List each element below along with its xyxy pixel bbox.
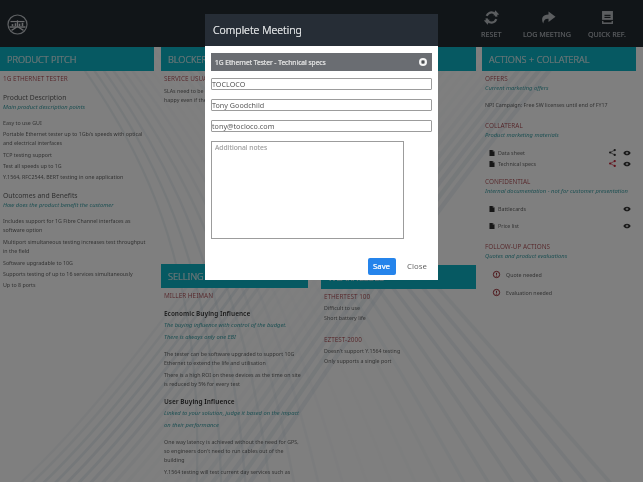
button[interactable]: View	[621, 158, 632, 169]
staticText: tony@tocloco.com	[212, 121, 275, 131]
button[interactable]: SELLING STRATEGY	[161, 264, 308, 288]
staticText: Close	[407, 261, 427, 272]
button[interactable]: BLOCKERS	[161, 47, 308, 71]
staticText: Product Description	[3, 93, 67, 102]
staticText: The tester can be software upgraded to s…	[164, 350, 302, 367]
staticText: WEAKNESSES	[328, 271, 385, 284]
staticText: Y.1564, RFC2544, BERT testing in one app…	[3, 173, 124, 180]
staticText: Battlecards	[498, 205, 526, 212]
button[interactable]: ACTIONS + COLLATERAL	[482, 47, 636, 71]
button[interactable]: Quote needed	[493, 268, 634, 280]
button[interactable]: Remove	[419, 58, 427, 66]
button[interactable]: Save	[368, 258, 396, 275]
staticText: Product marketing materials	[485, 131, 559, 139]
staticText: Includes support for 1G Fibre Channel in…	[3, 217, 148, 234]
staticText: LOG MEETING	[523, 29, 571, 39]
staticText: Additional notes	[215, 143, 268, 152]
staticText: Current marketing offers	[485, 84, 549, 92]
staticText: Software upgradable to 10G	[3, 259, 73, 266]
staticText: How does the product benefit the custome…	[3, 201, 114, 209]
staticText: Price list	[498, 222, 519, 229]
staticText: Evaluation needed	[506, 289, 553, 296]
staticText: EZTEST-2000	[324, 335, 362, 344]
button[interactable]: Additional notes	[211, 141, 404, 239]
staticText: TOCLOCO	[212, 79, 246, 89]
staticText: The buying influence with control of the…	[164, 321, 302, 341]
staticText: Doesn't support Y.1564 testing	[324, 347, 401, 354]
staticText: Y.1564 testing will test current day ser…	[164, 468, 302, 478]
button[interactable]: QUICK REF.	[578, 3, 636, 45]
staticText: SERVICE USUALLY DIFFICULT TO TEST	[164, 74, 276, 83]
staticText: Difficult to use	[324, 304, 361, 311]
staticText: COLLATERAL	[485, 121, 523, 130]
staticText: TCP testing support	[3, 151, 53, 158]
staticText: OFFERS	[485, 74, 508, 83]
button[interactable]: Evaluation needed	[493, 286, 634, 298]
staticText: ACTIONS + COLLATERAL	[489, 53, 590, 66]
staticText: Economic Buying Influence	[164, 309, 251, 318]
staticText: QUICK REF.	[588, 29, 626, 39]
button[interactable]: RESET	[466, 3, 516, 45]
button[interactable]: View	[621, 147, 632, 158]
staticText: RESET	[481, 29, 502, 39]
staticText: Multiport simultaneous testing increases…	[3, 238, 148, 255]
staticText: User Buying Influence	[164, 397, 235, 406]
button[interactable]: Technical specs	[485, 158, 634, 169]
staticText: Technical specs	[498, 160, 537, 167]
staticText: 1G Ethernet Tester - Technical specs	[215, 58, 326, 67]
staticText: Quote needed	[506, 271, 542, 278]
staticText: Outcomes and Benefits	[3, 191, 78, 200]
staticText: MILLER HEIMAN	[164, 291, 214, 300]
button[interactable]: 1G Ethernet Tester - Technical specs	[211, 53, 432, 71]
button[interactable]: tony@tocloco.com	[211, 120, 432, 132]
staticText: SELLING STRATEGY	[168, 270, 249, 283]
staticText: One way latency is achieved without the …	[164, 438, 302, 464]
button[interactable]: Data sheet	[485, 147, 634, 158]
staticText: NPI Campaign: Free SW licenses until end…	[485, 101, 608, 108]
button[interactable]: Battlecards	[485, 203, 634, 214]
button[interactable]: View	[621, 220, 632, 231]
button[interactable]: Tony Goodchild	[211, 99, 432, 111]
button[interactable]: LOG MEETING	[516, 3, 578, 45]
staticText: Portable Ethernet tester up to 1Gb/s spe…	[3, 130, 148, 147]
staticText: Complete Meeting	[213, 23, 302, 37]
button[interactable]: WEAKNESSES	[321, 265, 476, 289]
staticText: Only supports a single port	[324, 357, 392, 364]
staticText: Easy to use GUI	[3, 119, 42, 126]
button[interactable]: TOCLOCO	[211, 78, 432, 90]
staticText: Tony Goodchild	[212, 100, 265, 110]
staticText: Main product description points	[3, 103, 86, 111]
button[interactable]: Home	[7, 14, 28, 35]
staticText: ETHERTEST 100	[324, 292, 371, 301]
button[interactable]: Share	[607, 158, 618, 169]
staticText: FOLLOW-UP ACTIONS	[485, 242, 551, 251]
button[interactable]: Price list	[485, 220, 634, 231]
staticText: SLAs need to be put in place to ensure t…	[164, 87, 302, 104]
button[interactable]: View	[621, 203, 632, 214]
button[interactable]: PRODUCT PITCH	[0, 47, 154, 71]
staticText: Supports testing of up to 16 services si…	[3, 270, 133, 277]
staticText: Test all speeds up to 1G	[3, 162, 62, 169]
button[interactable]: COMPETITION	[321, 47, 476, 71]
staticText: There is a high ROI on these devices as …	[164, 371, 302, 388]
staticText: Internal documentation - not for custome…	[485, 187, 628, 195]
button[interactable]: Close	[405, 258, 429, 275]
staticText: Save	[373, 261, 391, 272]
button[interactable]: Share	[607, 147, 618, 158]
staticText: CONFIDENTIAL	[485, 177, 531, 186]
staticText: PRODUCT PITCH	[7, 53, 77, 66]
staticText: Data sheet	[498, 149, 525, 156]
staticText: BLOCKERS	[168, 53, 213, 66]
staticText: Quotes and product evaluations	[485, 252, 568, 260]
staticText: Linked to your solution, judge it based …	[164, 409, 302, 429]
staticText: Short battery life	[324, 314, 366, 321]
staticText: Up to 8 ports	[3, 281, 36, 288]
staticText: 1G ETHERNET TESTER	[3, 74, 68, 83]
